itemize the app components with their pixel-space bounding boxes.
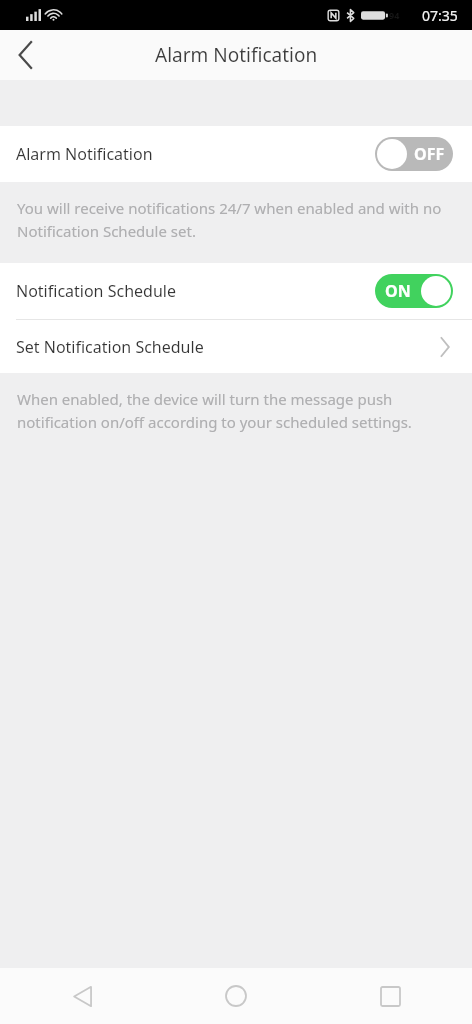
button[interactable]: Set Notification Schedule (0, 320, 472, 373)
staticText: 94 (389, 9, 400, 21)
button[interactable]: Alarm Notification (0, 126, 472, 182)
button[interactable]: On (375, 274, 453, 308)
staticText: ON (385, 280, 411, 302)
staticText: Alarm Notification (16, 143, 375, 165)
staticText: OFF (414, 143, 445, 165)
staticText: 07:35 (422, 6, 458, 25)
button[interactable]: Recent apps (362, 968, 418, 1024)
staticText: Notification Schedule (16, 280, 375, 302)
staticText: Alarm Notification (155, 42, 318, 68)
button[interactable]: Notification Schedule (0, 263, 472, 319)
staticText: Set Notification Schedule (16, 336, 440, 358)
button[interactable]: Back (0, 30, 52, 80)
staticText: When enabled, the device will turn the m… (17, 389, 442, 432)
button[interactable]: Home (208, 968, 264, 1024)
staticText: You will receive notifications 24/7 when… (17, 198, 442, 241)
button[interactable]: Back (54, 968, 110, 1024)
button[interactable]: Off (375, 137, 453, 171)
